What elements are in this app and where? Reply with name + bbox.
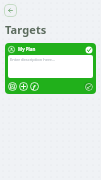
button[interactable]: Format text (30, 82, 39, 91)
button[interactable]: Add image (8, 82, 17, 91)
staticText: Targets (5, 22, 47, 37)
button[interactable]: Back (4, 4, 17, 17)
staticText: f (33, 83, 36, 91)
button[interactable]: Confirm (84, 45, 93, 54)
button[interactable]: Enter description here... (8, 55, 93, 78)
staticText: Enter description here... (10, 57, 55, 62)
button[interactable]: Add (19, 82, 28, 91)
button[interactable]: Send (84, 82, 93, 91)
button[interactable]: My Plan (5, 43, 96, 94)
staticText: My Plan (18, 46, 36, 52)
